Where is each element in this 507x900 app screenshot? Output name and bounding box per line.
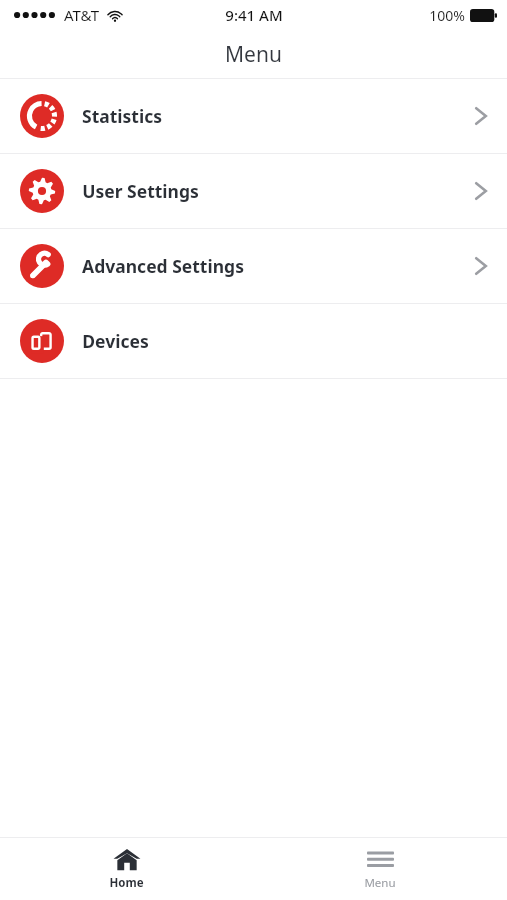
staticText: Advanced Settings xyxy=(82,254,244,278)
button[interactable]: Devices xyxy=(0,304,507,378)
other: Open User Settings xyxy=(473,178,489,204)
button[interactable]: Home xyxy=(0,838,253,900)
staticText: 9:41 AM xyxy=(225,5,283,25)
button[interactable]: User Settings xyxy=(0,154,507,228)
staticText: Statistics xyxy=(82,104,162,128)
other: Open Advanced Settings xyxy=(473,253,489,279)
other: Open Statistics xyxy=(473,103,489,129)
staticText: Devices xyxy=(82,329,149,353)
button[interactable]: Statistics xyxy=(0,79,507,153)
button[interactable]: Advanced Settings xyxy=(0,229,507,303)
staticText: User Settings xyxy=(82,179,199,203)
staticText: AT&T xyxy=(64,5,99,25)
staticText: Home xyxy=(109,875,144,891)
staticText: 100% xyxy=(429,6,465,25)
button[interactable]: Menu xyxy=(253,838,507,900)
staticText: Menu xyxy=(225,40,282,69)
staticText: Menu xyxy=(364,875,396,891)
